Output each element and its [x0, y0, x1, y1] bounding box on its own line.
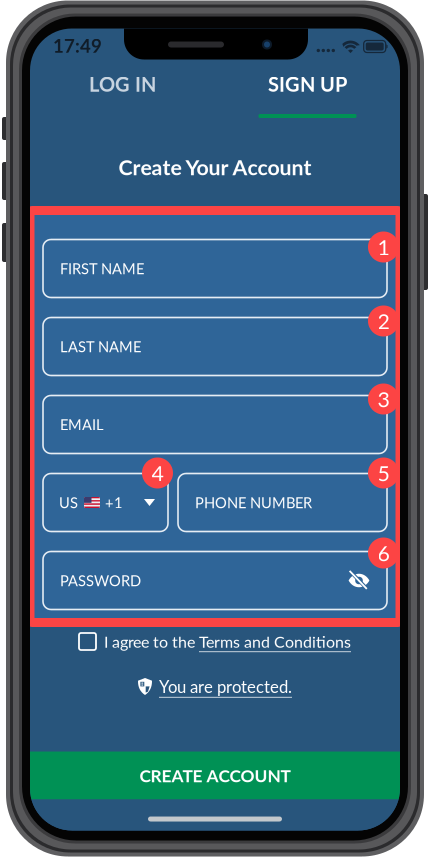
- staticText: +1: [105, 494, 123, 511]
- staticText: PASSWORD: [60, 572, 141, 589]
- button[interactable]: LOG IN: [30, 56, 215, 123]
- button[interactable]: SIGN UP: [215, 56, 400, 123]
- staticText: US: [59, 494, 78, 511]
- staticText: 1: [377, 234, 389, 260]
- staticText: 2: [377, 308, 389, 334]
- button[interactable]: I agree to the: [30, 622, 400, 660]
- button[interactable]: You are protected.: [30, 660, 400, 712]
- staticText: FIRST NAME: [60, 260, 144, 277]
- staticText: 5: [377, 460, 389, 486]
- staticText: Terms and Conditions: [199, 632, 351, 651]
- staticText: Create Your Account: [118, 154, 311, 180]
- staticText: LAST NAME: [60, 338, 141, 355]
- staticText: LOG IN: [89, 72, 156, 96]
- button[interactable]: US: [43, 473, 168, 531]
- button[interactable]: CREATE ACCOUNT: [30, 751, 400, 799]
- staticText: 4: [151, 460, 163, 486]
- staticText: 17:49: [53, 34, 102, 57]
- staticText: I agree to the: [104, 632, 199, 651]
- staticText: PHONE NUMBER: [195, 494, 312, 511]
- staticText: EMAIL: [60, 416, 104, 433]
- button[interactable]: Show password: [348, 570, 370, 590]
- staticText: CREATE ACCOUNT: [139, 765, 290, 786]
- staticText: 3: [377, 386, 389, 412]
- staticText: SIGN UP: [268, 72, 347, 96]
- staticText: You are protected.: [159, 676, 292, 696]
- staticText: 6: [377, 540, 389, 566]
